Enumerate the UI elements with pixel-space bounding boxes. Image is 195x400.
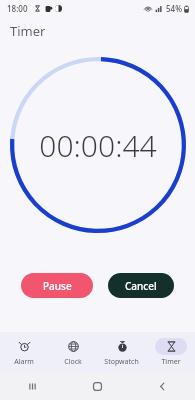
button[interactable]: Recent apps <box>0 372 65 400</box>
button[interactable]: Back <box>130 372 195 400</box>
staticText: Timer <box>161 357 181 367</box>
staticText: Clock <box>64 357 82 367</box>
staticText: Pause <box>43 279 72 293</box>
button[interactable]: Stopwatch <box>97 332 146 372</box>
staticText: 54% <box>166 3 182 14</box>
staticText: Cancel <box>125 279 157 293</box>
button[interactable]: Timer <box>146 332 195 372</box>
staticText: 00:00:44 <box>39 125 157 166</box>
staticText: Alarm <box>14 357 34 367</box>
button[interactable]: Clock <box>48 332 97 372</box>
staticText: Timer <box>10 22 46 40</box>
staticText: 18:00 <box>7 3 28 14</box>
button[interactable]: Home <box>65 372 130 400</box>
button[interactable]: Pause <box>21 273 93 298</box>
button[interactable]: Cancel <box>108 273 174 298</box>
button[interactable]: Alarm <box>0 332 48 372</box>
staticText: Stopwatch <box>104 357 139 367</box>
